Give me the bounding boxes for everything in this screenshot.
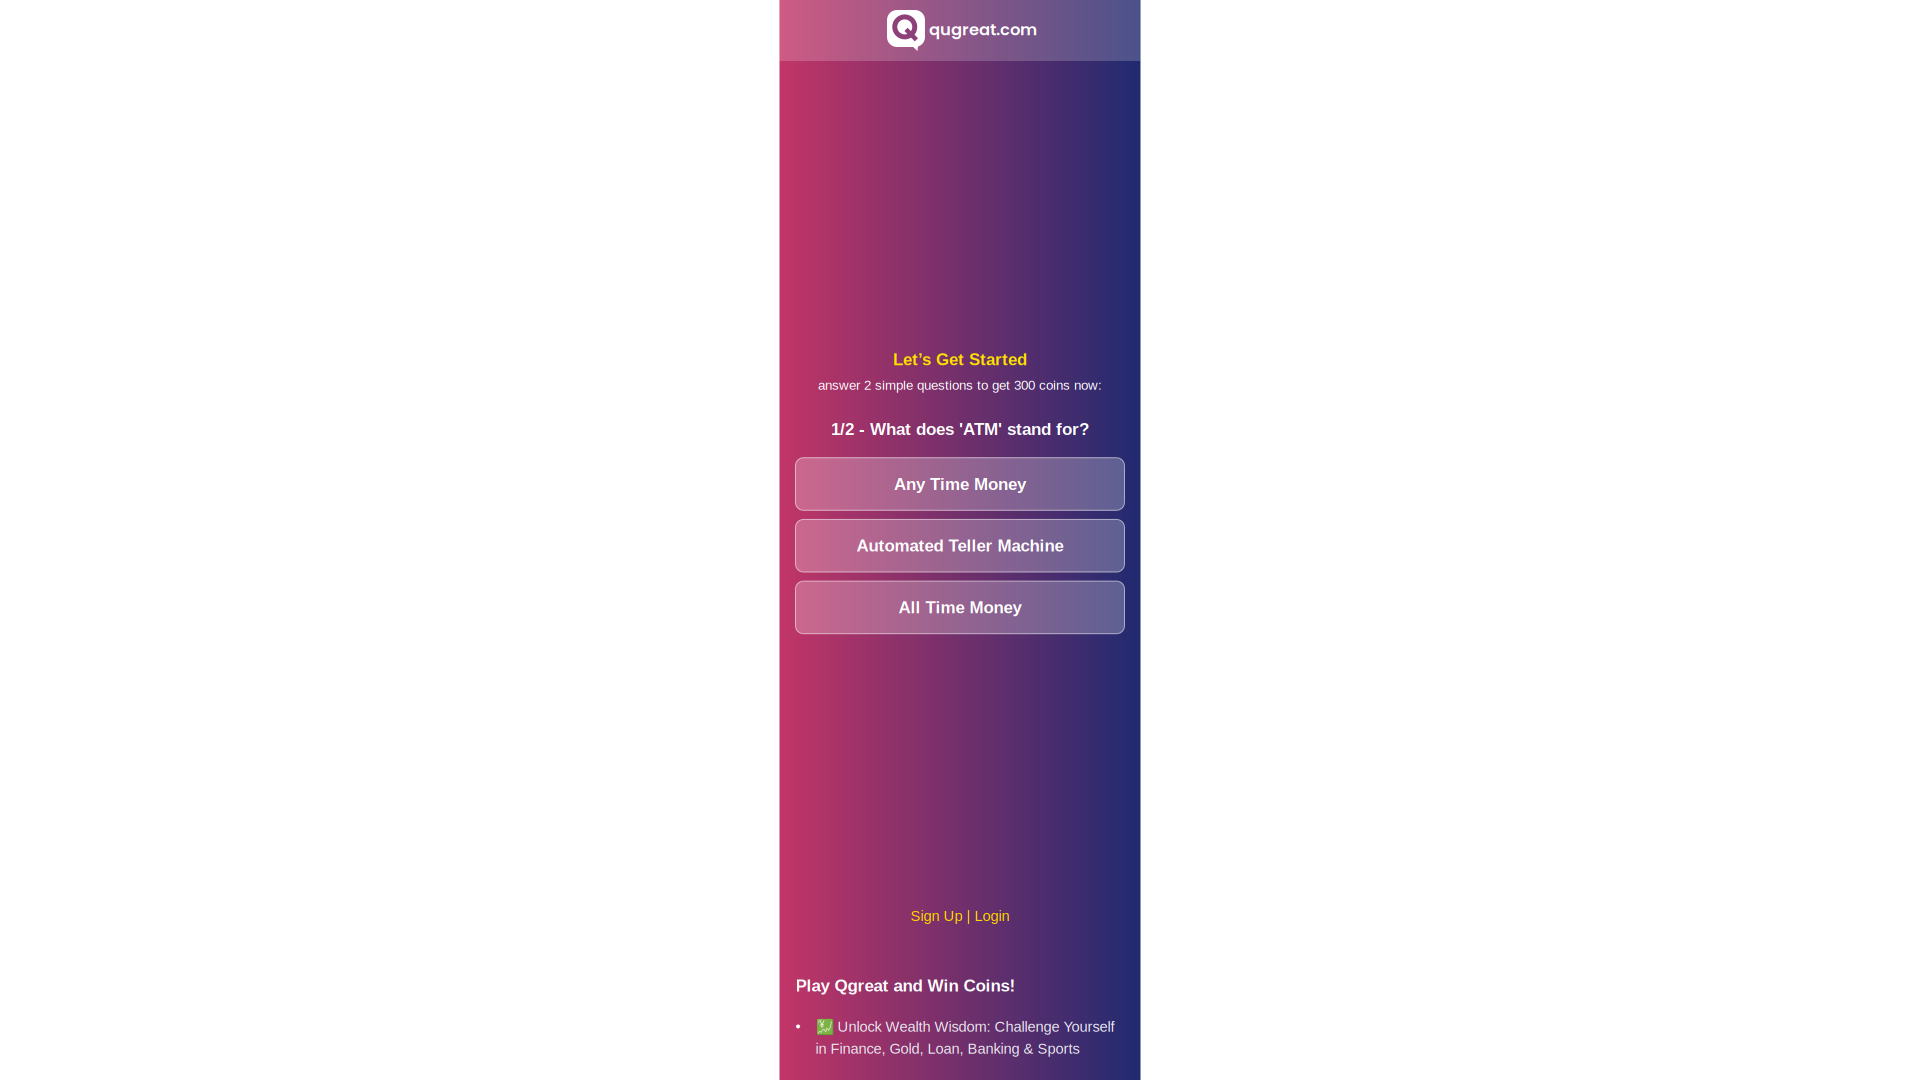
staticText: 1/2 - What does 'ATM' stand for? xyxy=(831,420,1089,439)
button[interactable]: Login xyxy=(974,908,1009,924)
staticText: Any Time Money xyxy=(894,475,1026,493)
staticText: answer 2 simple questions to get 300 coi… xyxy=(818,378,1102,393)
staticText: | xyxy=(962,908,974,924)
staticText: Automated Teller Machine xyxy=(856,536,1063,555)
button[interactable]: qugreat.com xyxy=(779,0,1140,61)
button[interactable]: Sign Up xyxy=(910,908,962,924)
staticText: Login xyxy=(974,908,1009,924)
staticText: Sign Up xyxy=(910,908,962,924)
staticText: qugreat.com xyxy=(929,18,1037,41)
staticText: • xyxy=(795,1018,800,1035)
staticText: Play Qgreat and Win Coins! xyxy=(795,976,1015,995)
staticText: All Time Money xyxy=(898,598,1021,617)
button[interactable]: Automated Teller Machine xyxy=(795,519,1124,572)
staticText: Let’s Get Started xyxy=(893,350,1027,369)
button[interactable]: Any Time Money xyxy=(795,458,1124,510)
button[interactable]: All Time Money xyxy=(795,581,1124,634)
staticText: 💹 Unlock Wealth Wisdom: Challenge Yourse… xyxy=(815,1018,1114,1057)
